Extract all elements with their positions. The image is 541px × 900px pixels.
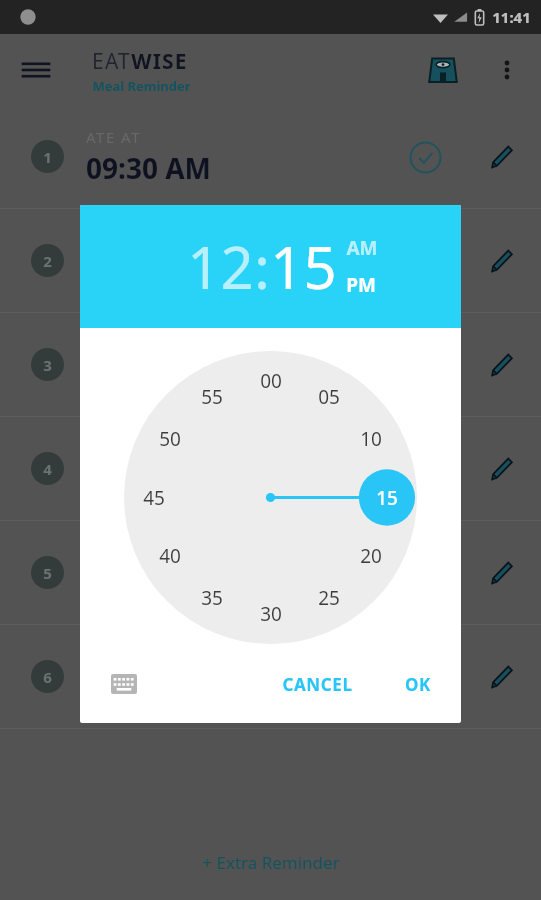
staticText: 09:30 AM <box>86 149 211 187</box>
staticText: 45 <box>143 485 165 511</box>
staticText: 25 <box>318 585 340 611</box>
staticText: OK <box>405 673 431 696</box>
button[interactable]: Edit reminder <box>479 655 523 699</box>
button[interactable]: AM <box>346 235 378 261</box>
staticText: 55 <box>201 384 223 410</box>
button[interactable]: Weight scale <box>421 48 465 92</box>
staticText: 11:41 <box>492 7 531 27</box>
staticText: 10 <box>360 426 382 452</box>
button[interactable]: 1 <box>0 105 541 208</box>
staticText: 6 <box>43 667 52 687</box>
button[interactable]: 12 <box>187 227 254 306</box>
staticText: 5 <box>43 563 52 583</box>
button[interactable]: CANCEL <box>268 664 367 705</box>
staticText: CANCEL <box>282 673 353 696</box>
staticText: 15 <box>376 485 398 511</box>
button[interactable]: 5 <box>0 521 541 624</box>
button[interactable]: 15 <box>270 227 337 306</box>
staticText: 40 <box>159 543 181 569</box>
staticText: 1 <box>43 147 52 167</box>
staticText: 2 <box>43 251 52 271</box>
button[interactable]: More options <box>485 48 529 92</box>
button[interactable]: Mark as done <box>403 135 447 179</box>
button[interactable]: 00 <box>124 351 417 644</box>
staticText: 12 <box>187 227 254 306</box>
staticText: 20 <box>360 543 382 569</box>
button[interactable]: 6 <box>0 625 541 728</box>
staticText: WISE <box>131 47 188 76</box>
staticText: Meal Reminder <box>92 77 191 95</box>
button[interactable]: PM <box>346 272 376 298</box>
button[interactable]: Switch to keyboard input <box>102 662 146 706</box>
staticText: 00 <box>260 368 282 394</box>
button[interactable]: + Extra Reminder <box>0 839 541 885</box>
button[interactable]: Edit reminder <box>479 239 523 283</box>
staticText: 30 <box>260 601 282 627</box>
button[interactable]: 4 <box>0 417 541 520</box>
staticText: 3 <box>43 355 52 375</box>
button[interactable]: Edit reminder <box>479 343 523 387</box>
button[interactable]: Edit reminder <box>479 135 523 179</box>
staticText: ATE AT <box>86 127 141 147</box>
button[interactable]: Open navigation menu <box>14 48 58 92</box>
button[interactable]: Edit reminder <box>479 551 523 595</box>
staticText: 05 <box>318 384 340 410</box>
staticText: AM <box>346 235 378 261</box>
staticText: 4 <box>43 459 52 479</box>
button[interactable]: 3 <box>0 313 541 416</box>
staticText: + Extra Reminder <box>202 851 340 874</box>
button[interactable]: Edit reminder <box>479 447 523 491</box>
button[interactable]: OK <box>391 664 445 705</box>
staticText: 50 <box>159 426 181 452</box>
staticText: 35 <box>201 585 223 611</box>
staticText: PM <box>346 272 376 298</box>
staticText: : <box>254 227 270 306</box>
button[interactable]: 2 <box>0 209 541 312</box>
staticText: EAT <box>92 47 131 76</box>
staticText: 15 <box>270 227 337 306</box>
